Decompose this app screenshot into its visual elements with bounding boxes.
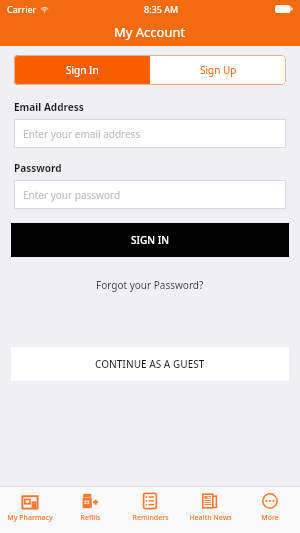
staticText: SIGN IN	[131, 233, 169, 247]
button[interactable]: Enter your password	[14, 180, 286, 209]
staticText: My Account	[114, 23, 186, 41]
staticText: Enter your email address	[23, 127, 141, 141]
staticText: CONTINUE AS A GUEST	[95, 357, 205, 371]
button[interactable]: Reminders	[120, 491, 180, 533]
staticText: Carrier	[7, 3, 37, 15]
staticText: Enter your password	[23, 188, 121, 202]
button[interactable]: More	[240, 491, 300, 533]
staticText: Email Address	[14, 100, 84, 114]
staticText: Password	[14, 161, 62, 175]
button[interactable]: SIGN IN	[11, 223, 289, 257]
button[interactable]: Enter your email address	[14, 119, 286, 148]
staticText: Sign In	[66, 63, 99, 77]
button[interactable]: Refills	[60, 491, 120, 533]
button[interactable]: Health News	[180, 491, 240, 533]
button[interactable]: Forgot your Password?	[92, 274, 208, 296]
button[interactable]: Sign Up	[150, 55, 286, 85]
staticText: More	[261, 513, 279, 523]
staticText: Health News	[189, 513, 232, 523]
button[interactable]: CONTINUE AS A GUEST	[11, 347, 289, 381]
staticText: Reminders	[132, 513, 169, 523]
staticText: 8:35 AM	[144, 3, 179, 15]
staticText: Forgot your Password?	[96, 278, 204, 292]
staticText: My Pharmacy	[7, 513, 53, 523]
staticText: Refills	[80, 513, 101, 523]
button[interactable]: My Pharmacy	[0, 491, 60, 533]
staticText: Sign Up	[200, 63, 237, 77]
button[interactable]: Sign In	[14, 55, 150, 85]
